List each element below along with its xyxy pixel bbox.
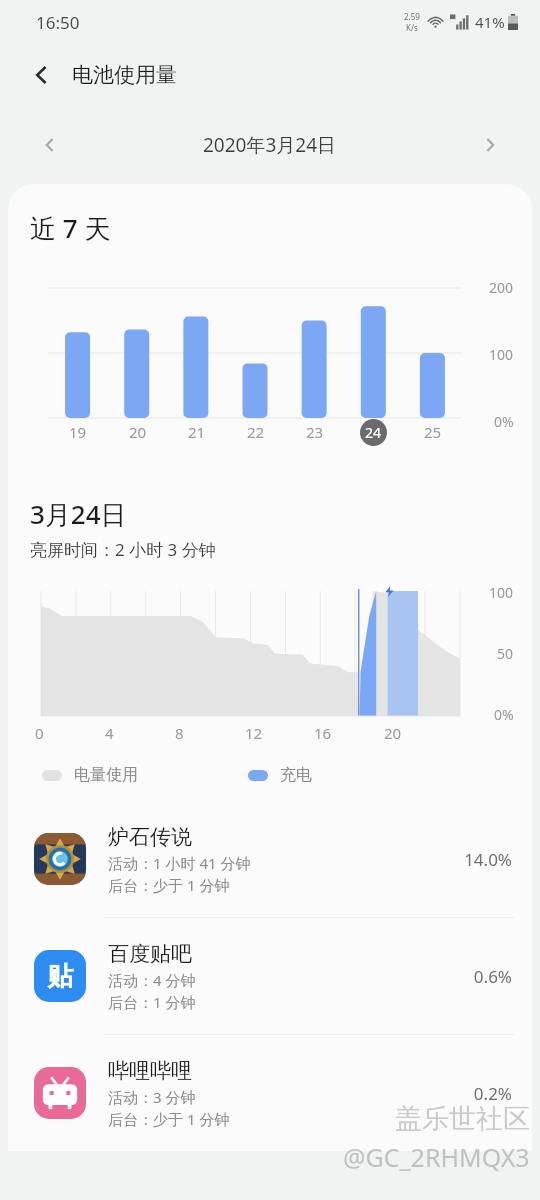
staticText: 活动：4 分钟 — [108, 970, 196, 990]
button[interactable]: 炉石传说 — [8, 801, 532, 917]
staticText: 2.59 — [404, 11, 420, 22]
staticText: K/s — [406, 22, 418, 33]
staticText: 19 — [69, 422, 87, 442]
staticText: 41% — [475, 12, 505, 32]
staticText: 12 — [245, 723, 263, 743]
staticText: 0.6% — [473, 965, 512, 988]
staticText: 百度贴吧 — [108, 941, 192, 967]
staticText: 8 — [175, 723, 184, 743]
staticText: 后台：少于 1 分钟 — [108, 1109, 230, 1129]
staticText: 2020年3月24日 — [203, 132, 337, 158]
staticText: 22 — [247, 422, 265, 442]
staticText: 活动：1 小时 41 分钟 — [108, 853, 251, 873]
button[interactable]: Previous day — [28, 123, 72, 167]
staticText: 14.0% — [464, 848, 512, 871]
staticText: 23 — [306, 422, 324, 442]
staticText: 盖乐世社区 — [395, 1102, 530, 1136]
staticText: 4 — [105, 723, 114, 743]
staticText: 50 — [497, 644, 514, 663]
staticText: 200 — [489, 278, 514, 297]
staticText: 100 — [489, 345, 514, 364]
staticText: 24 — [365, 423, 382, 442]
staticText: 0 — [35, 723, 44, 743]
staticText: 贴 — [47, 960, 73, 993]
staticText: 近 7 天 — [30, 210, 111, 246]
staticText: 哔哩哔哩 — [108, 1058, 192, 1084]
staticText: 炉石传说 — [108, 824, 192, 850]
staticText: 活动：3 分钟 — [108, 1087, 196, 1107]
staticText: 后台：少于 1 分钟 — [108, 875, 230, 895]
staticText: 16 — [314, 723, 332, 743]
staticText: 0.2% — [473, 1082, 512, 1105]
staticText: 20 — [384, 723, 402, 743]
staticText: 3月24日 — [30, 496, 127, 532]
staticText: 0% — [494, 412, 514, 431]
button[interactable]: Back — [20, 53, 64, 97]
staticText: 电量使用 — [74, 765, 138, 785]
staticText: 25 — [424, 422, 442, 442]
staticText: 充电 — [280, 765, 312, 785]
staticText: 20 — [129, 422, 147, 442]
button[interactable]: 贴 — [8, 918, 532, 1034]
button[interactable]: 哔哩哔哩 — [8, 1035, 532, 1151]
staticText: 0% — [494, 705, 514, 724]
staticText: 亮屏时间：2 小时 3 分钟 — [30, 538, 216, 561]
staticText: 电池使用量 — [72, 62, 177, 88]
button[interactable]: Next day — [468, 123, 512, 167]
staticText: 16:50 — [36, 11, 80, 34]
staticText: 后台：1 分钟 — [108, 992, 196, 1012]
staticText: 21 — [188, 422, 206, 442]
staticText: 100 — [489, 583, 514, 602]
staticText: @GC_2RHMQX3 — [343, 1140, 530, 1174]
